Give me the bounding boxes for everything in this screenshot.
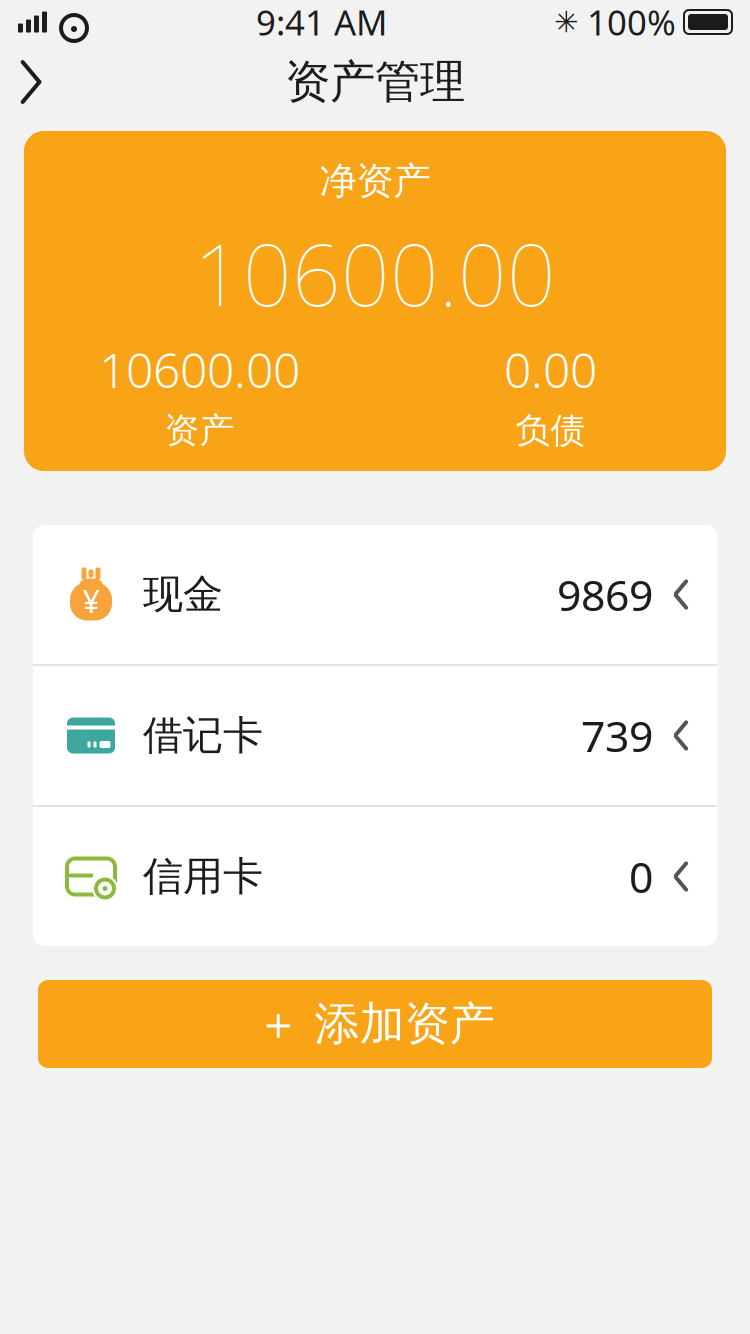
staticText: 信用卡	[143, 852, 263, 901]
staticText: 10600.00	[194, 216, 556, 329]
button[interactable]: ¥	[33, 525, 717, 664]
button[interactable]: 借记卡	[33, 666, 717, 805]
staticText: ¥	[82, 579, 100, 622]
staticText: 负债	[515, 409, 585, 452]
staticText: 10600.00	[99, 337, 300, 401]
staticText: 资产管理	[285, 54, 465, 110]
staticText: 添加资产	[314, 996, 494, 1052]
staticText: 借记卡	[143, 711, 263, 760]
staticText: 739	[581, 707, 653, 764]
staticText: ✳	[554, 5, 579, 39]
staticText: 资产	[164, 409, 234, 452]
staticText: 0	[629, 848, 653, 905]
staticText: 现金	[143, 570, 223, 619]
staticText: 9869	[557, 566, 653, 623]
staticText: 0.00	[504, 337, 597, 401]
staticText: 9:41 AM	[256, 0, 387, 45]
button[interactable]: Back	[0, 51, 46, 113]
staticText: 净资产	[319, 158, 430, 204]
staticText: 100%	[587, 0, 676, 45]
staticText: ＋	[255, 996, 300, 1052]
button[interactable]: ＋	[38, 980, 712, 1068]
button[interactable]: 信用卡	[33, 807, 717, 946]
